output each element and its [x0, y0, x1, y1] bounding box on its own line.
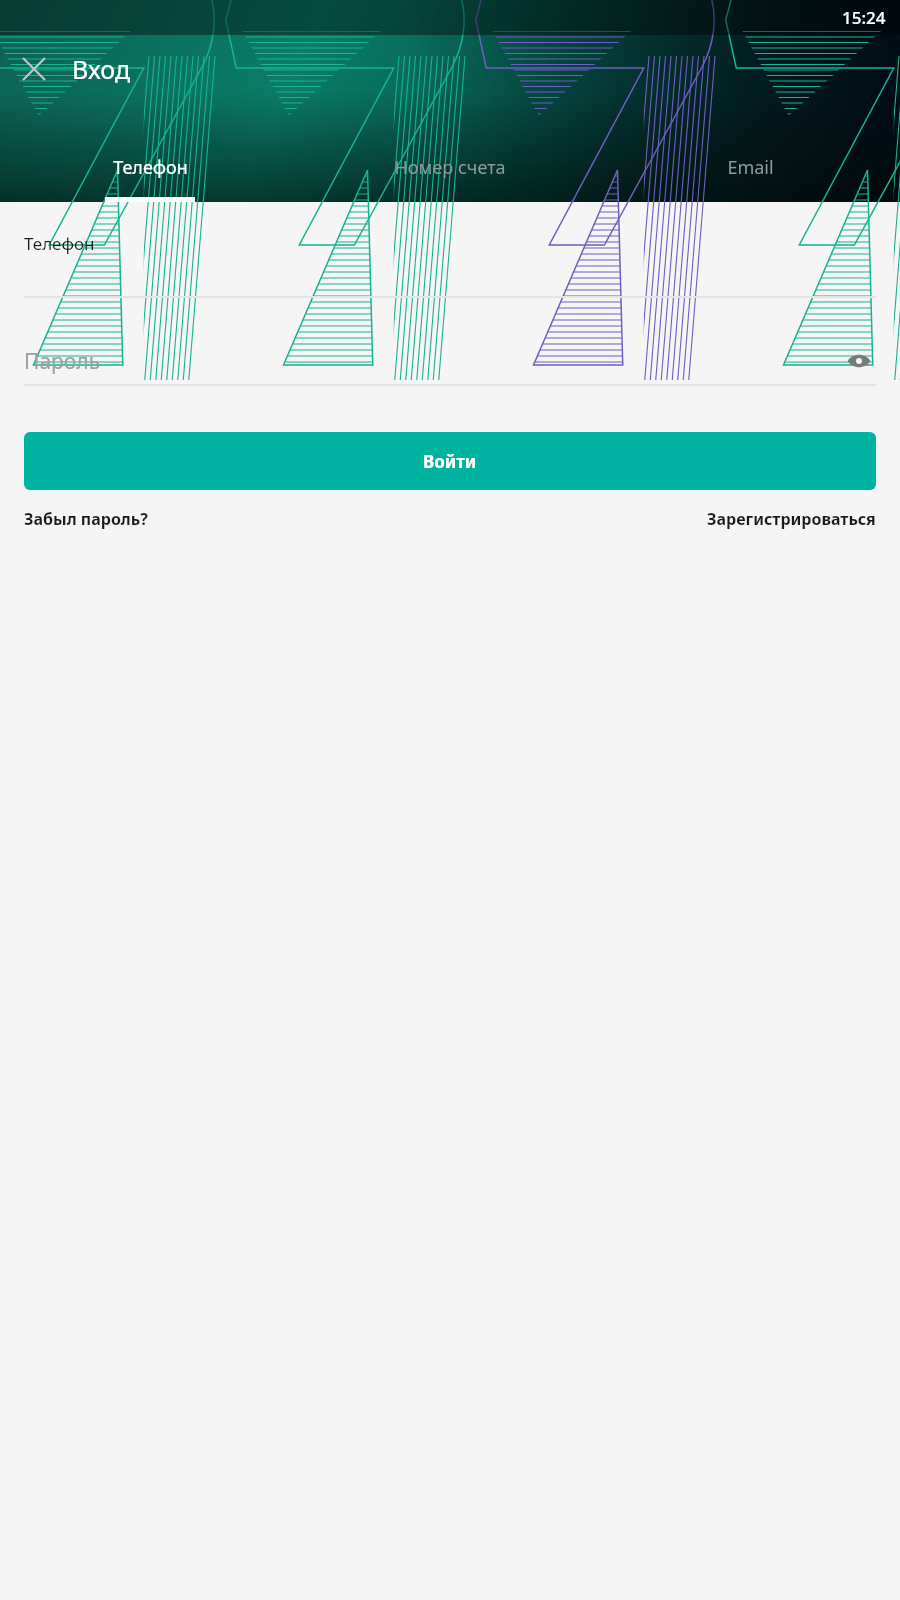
button[interactable]: Close	[0, 35, 68, 103]
button[interactable]: Телефон	[0, 133, 300, 202]
staticText: Вход	[72, 52, 131, 86]
staticText: Зарегистрироваться	[707, 508, 876, 530]
button[interactable]: Пароль	[0, 344, 900, 386]
staticText: Забыл пароль?	[24, 508, 148, 530]
staticText: Номер счета	[394, 155, 506, 180]
staticText: Телефон	[24, 232, 95, 255]
button[interactable]: Номер счета	[300, 133, 600, 202]
staticText: Email	[727, 155, 774, 180]
button[interactable]: Забыл пароль?	[24, 508, 148, 530]
staticText: Пароль	[24, 347, 842, 376]
button[interactable]: Войти	[24, 432, 876, 490]
staticText: Телефон	[113, 155, 188, 180]
staticText: Войти	[423, 450, 477, 473]
button[interactable]: Зарегистрироваться	[707, 508, 876, 530]
button[interactable]: Email	[600, 133, 900, 202]
button[interactable]: Show password	[842, 344, 876, 378]
staticText: 15:24	[842, 6, 886, 29]
button[interactable]: Телефон	[0, 232, 900, 298]
